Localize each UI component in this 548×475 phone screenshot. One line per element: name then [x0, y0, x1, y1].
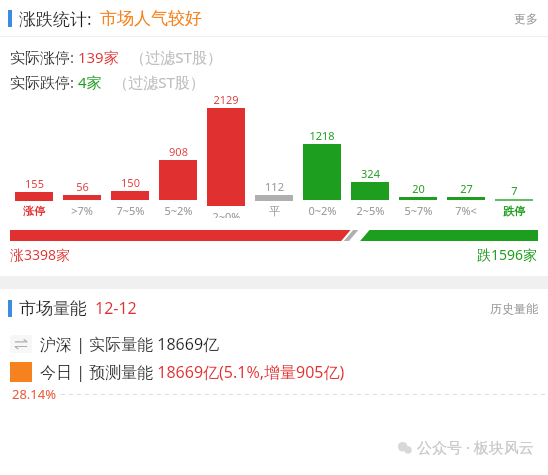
staticText: 1218: [309, 128, 335, 143]
staticText: 155: [25, 176, 44, 191]
staticText: 涨停: [23, 204, 45, 218]
staticText: 28.14%: [12, 385, 57, 403]
staticText: 更多: [514, 11, 538, 26]
staticText: 7%<: [455, 203, 477, 218]
staticText: 150: [121, 175, 140, 190]
staticText: 20: [412, 181, 425, 196]
staticText: 跌1596家: [477, 245, 538, 264]
staticText: 7~5%: [116, 203, 145, 218]
staticText: 0~2%: [308, 203, 337, 218]
staticText: 27: [460, 181, 473, 196]
staticText: 12-12: [95, 297, 137, 319]
button[interactable]: 市场量能: [0, 289, 548, 327]
button[interactable]: [10, 230, 538, 241]
staticText: 324: [361, 166, 380, 181]
staticText: 5~7%: [404, 203, 433, 218]
button[interactable]: 沪深切换: [10, 333, 548, 355]
staticText: 涨3398家: [10, 245, 71, 264]
staticText: >7%: [71, 203, 93, 218]
staticText: 市场人气较好: [100, 8, 202, 29]
staticText: 市场量能: [19, 298, 87, 319]
staticText: 908: [169, 144, 188, 159]
button[interactable]: 更多: [514, 11, 538, 26]
staticText: 平: [269, 204, 280, 218]
staticText: 2~0%: [212, 209, 241, 218]
staticText: 涨跌统计:: [19, 7, 92, 30]
staticText: 7: [511, 183, 518, 198]
staticText: 112: [265, 179, 284, 194]
staticText: 56: [76, 179, 89, 194]
button[interactable]: 今日 | 预测量能 18669亿(5.1%,增量905亿): [10, 361, 548, 383]
button[interactable]: 涨跌统计:: [0, 0, 548, 36]
staticText: 跌停: [503, 204, 525, 218]
button[interactable]: 历史量能: [490, 301, 538, 316]
other: 沪深切换: [10, 335, 32, 353]
staticText: 公众号 · 板块风云: [417, 437, 534, 457]
staticText: 沪深 | 实际量能 18669亿: [40, 333, 220, 355]
staticText: 2129: [213, 92, 239, 107]
staticText: 今日 | 预测量能 18669亿(5.1%,增量905亿): [40, 361, 345, 383]
staticText: 实际跌停: 4家 （过滤ST股）: [10, 72, 205, 92]
staticText: 历史量能: [490, 301, 538, 316]
staticText: 5~2%: [164, 203, 193, 218]
staticText: 2~5%: [356, 203, 385, 218]
staticText: 实际涨停: 139家 （过滤ST股）: [10, 47, 222, 67]
